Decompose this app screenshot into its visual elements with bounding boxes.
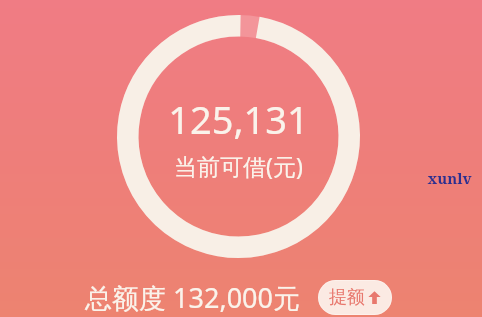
other: Increase credit limit — [368, 291, 381, 304]
staticText: xunlv — [427, 168, 472, 188]
button[interactable]: 提额 — [318, 280, 392, 315]
staticText: 当前可借(元) — [174, 150, 303, 181]
staticText: 总额度 132,000元 — [85, 279, 300, 316]
staticText: 125,131 — [168, 93, 309, 145]
staticText: 提额 — [329, 286, 365, 309]
